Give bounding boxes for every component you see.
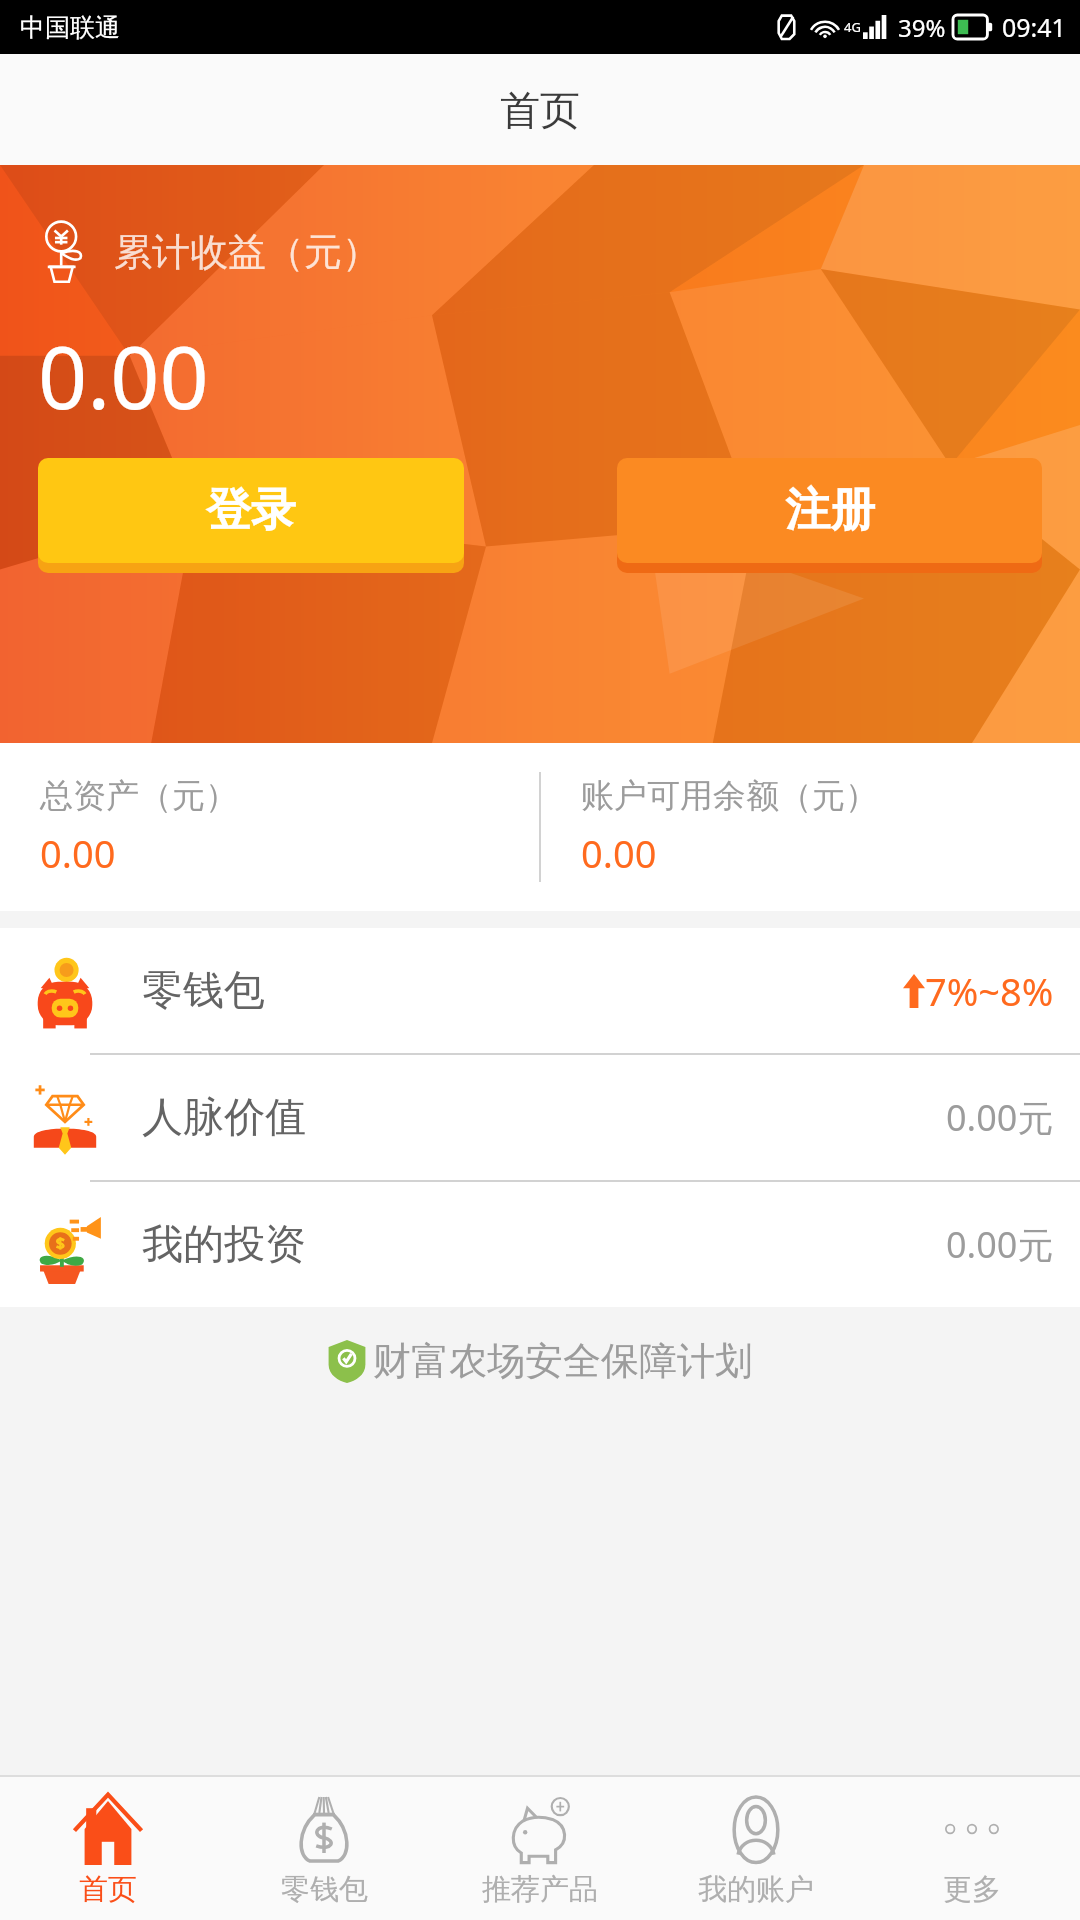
other: Wallet [26, 952, 104, 1030]
button[interactable]: Wallet [0, 928, 1080, 1053]
staticText: 人脉价值 [142, 1092, 306, 1144]
staticText: 7%~8% [925, 965, 1054, 1017]
staticText: 首页 [79, 1871, 137, 1908]
button[interactable]: 推荐产品 [432, 1777, 648, 1920]
staticText: 推荐产品 [482, 1871, 598, 1908]
staticText: 我的投资 [142, 1219, 306, 1271]
staticText: 登录 [206, 482, 296, 539]
button[interactable]: Network value [0, 1055, 1080, 1180]
staticText: 更多 [943, 1871, 1001, 1908]
staticText: 0.00 [38, 317, 209, 434]
staticText: 账户可用余额（元） [581, 775, 878, 817]
button[interactable]: 财富农场安全保障计划 [327, 1337, 753, 1385]
button[interactable]: 我的账户 [648, 1777, 864, 1920]
staticText: 39% [898, 11, 946, 44]
button[interactable]: 首页 [0, 1777, 216, 1920]
staticText: 0.00 [581, 827, 657, 879]
staticText: 零钱包 [281, 1871, 368, 1908]
staticText: 4G [844, 18, 861, 36]
button[interactable]: 零钱包 [216, 1777, 432, 1920]
other: My investment [26, 1206, 104, 1284]
button[interactable]: 注册 [617, 458, 1042, 573]
staticText: 中国联通 [20, 12, 120, 43]
staticText: 首页 [500, 85, 580, 135]
staticText: 0.00 [40, 827, 116, 879]
button[interactable]: 更多 [864, 1777, 1080, 1920]
staticText: 注册 [785, 482, 875, 539]
staticText: 09:41 [1002, 10, 1066, 44]
staticText: 零钱包 [142, 965, 265, 1017]
staticText: 财富农场安全保障计划 [373, 1337, 753, 1385]
staticText: 0.00元 [946, 1220, 1054, 1269]
staticText: 总资产（元） [40, 775, 238, 817]
button[interactable]: 登录 [38, 458, 464, 573]
staticText: 累计收益（元） [114, 228, 380, 276]
staticText: 0.00元 [946, 1093, 1054, 1142]
staticText: 我的账户 [698, 1871, 814, 1908]
other: Network value [26, 1079, 104, 1157]
button[interactable]: My investment [0, 1182, 1080, 1307]
